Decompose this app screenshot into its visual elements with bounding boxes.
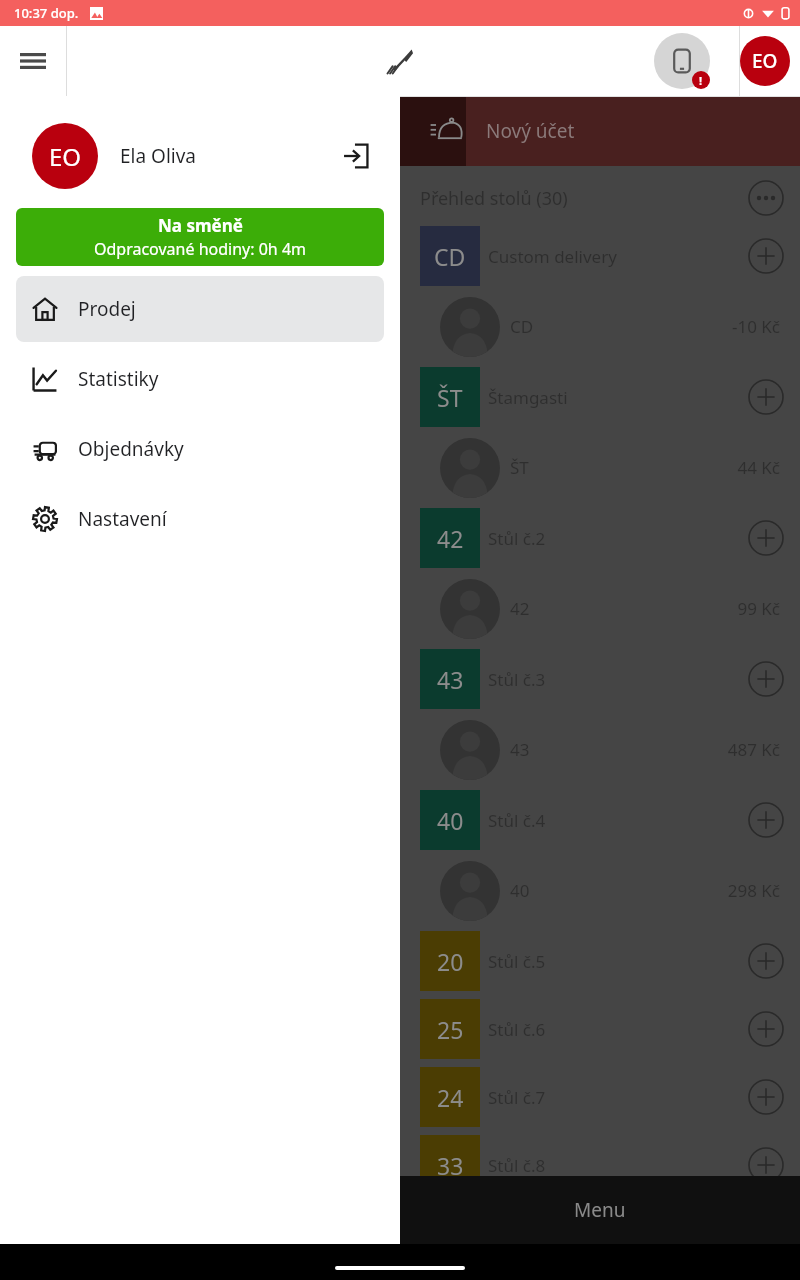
button[interactable]: 43 xyxy=(400,645,800,713)
button[interactable]: CD xyxy=(400,290,800,363)
staticText: Přehled stolů (30) xyxy=(420,186,568,211)
staticText: Ela Oliva xyxy=(120,143,197,169)
button[interactable]: EO xyxy=(740,36,790,86)
button[interactable]: Zařízení xyxy=(654,33,710,89)
staticText: 43 xyxy=(437,664,464,695)
staticText: Stůl č.5 xyxy=(488,950,546,973)
button[interactable]: Přidat xyxy=(746,1077,786,1117)
button[interactable]: Nastavení xyxy=(16,486,384,552)
staticText: Stůl č.8 xyxy=(488,1154,546,1177)
staticText: CD xyxy=(510,315,534,338)
staticText: 42 xyxy=(437,523,464,554)
staticText: 10:37 dop. xyxy=(14,4,79,22)
staticText: ! xyxy=(699,73,703,88)
staticText: Custom delivery xyxy=(488,245,617,268)
button[interactable]: Přidat xyxy=(746,518,786,558)
staticText: ŠT xyxy=(510,456,529,479)
button[interactable]: 33 xyxy=(400,1131,800,1199)
button[interactable]: Restaurace xyxy=(378,39,422,83)
button[interactable]: 25 xyxy=(400,995,800,1063)
staticText: 24 xyxy=(437,1082,464,1113)
button[interactable]: 40 xyxy=(400,854,800,927)
staticText: 298 Kč xyxy=(727,879,780,902)
staticText: 40 xyxy=(510,879,530,902)
staticText: Odpracované hodiny: 0h 4m xyxy=(94,238,307,260)
staticText: Nastavení xyxy=(78,506,167,532)
button[interactable]: 42 xyxy=(400,504,800,572)
button[interactable]: 42 xyxy=(400,572,800,645)
staticText: Na směně xyxy=(158,214,243,237)
staticText: Prodej xyxy=(78,296,136,322)
button[interactable]: EO xyxy=(0,114,400,198)
button[interactable]: Statistiky xyxy=(16,346,384,412)
staticText: ŠT xyxy=(437,382,463,413)
button[interactable]: Odhlásit se xyxy=(332,132,380,180)
staticText: 44 Kč xyxy=(737,456,780,479)
staticText: CD xyxy=(434,241,466,272)
button[interactable]: Přidat xyxy=(746,1009,786,1049)
button[interactable]: Přidat xyxy=(746,941,786,981)
staticText: Objednávky xyxy=(78,436,184,462)
button[interactable]: Prodej xyxy=(16,276,384,342)
button[interactable]: 20 xyxy=(400,927,800,995)
staticText: 43 xyxy=(510,738,530,761)
staticText: Stůl č.6 xyxy=(488,1018,546,1041)
button[interactable]: 24 xyxy=(400,1063,800,1131)
staticText: Nový účet xyxy=(486,118,575,144)
button[interactable]: Přidat xyxy=(746,377,786,417)
button[interactable]: Více xyxy=(746,178,786,218)
button[interactable]: Přidat xyxy=(746,800,786,840)
staticText: Štamgasti xyxy=(488,386,568,409)
staticText: 25 xyxy=(437,1014,464,1045)
staticText: 20 xyxy=(437,946,464,977)
button[interactable]: Objednávky xyxy=(16,416,384,482)
button[interactable]: Přidat xyxy=(746,236,786,276)
button[interactable]: CD xyxy=(400,222,800,290)
button[interactable]: 43 xyxy=(400,713,800,786)
button[interactable]: Přidat xyxy=(746,659,786,699)
staticText: 99 Kč xyxy=(737,597,780,620)
staticText: Stůl č.4 xyxy=(488,809,546,832)
staticText: Stůl č.2 xyxy=(488,527,546,550)
staticText: -10 Kč xyxy=(731,315,780,338)
staticText: Stůl č.7 xyxy=(488,1086,546,1109)
staticText: 40 xyxy=(437,805,464,836)
staticText: 487 Kč xyxy=(727,738,780,761)
button[interactable]: Na směně xyxy=(16,208,384,266)
button[interactable]: ŠT xyxy=(400,431,800,504)
staticText: 42 xyxy=(510,597,530,620)
staticText: Stůl č.3 xyxy=(488,668,546,691)
button[interactable]: ŠT xyxy=(400,363,800,431)
button[interactable]: Menu xyxy=(0,26,66,96)
staticText: EO xyxy=(49,140,82,173)
button[interactable]: Přidat xyxy=(746,1145,786,1185)
staticText: EO xyxy=(752,48,778,74)
button[interactable]: Nový účet xyxy=(410,96,480,166)
button[interactable]: 40 xyxy=(400,786,800,854)
staticText: 33 xyxy=(437,1150,464,1181)
staticText: Menu xyxy=(574,1197,626,1223)
staticText: Statistiky xyxy=(78,366,159,392)
